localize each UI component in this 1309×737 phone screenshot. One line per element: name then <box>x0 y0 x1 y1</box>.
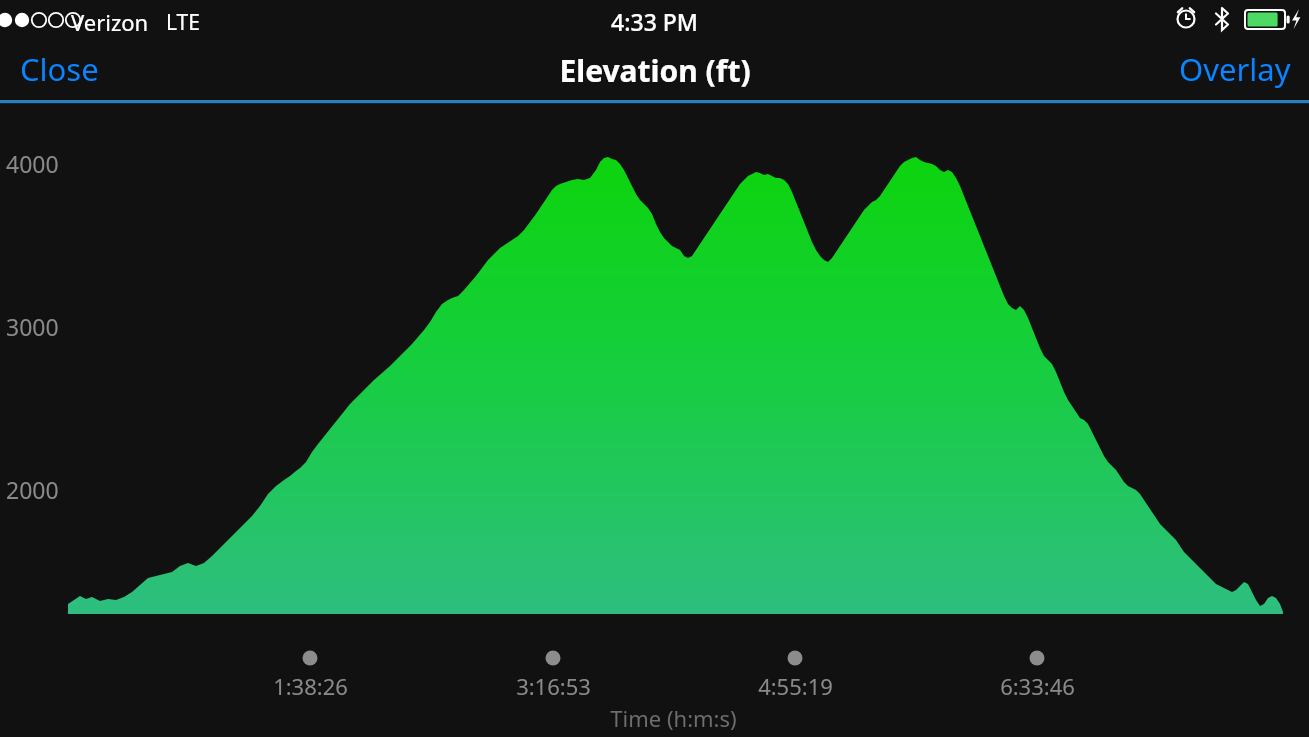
staticText: 4:55:19 <box>758 671 833 701</box>
staticText: 3000 <box>6 311 59 342</box>
staticText: 2000 <box>6 474 59 505</box>
staticText: Verizon <box>71 7 149 37</box>
staticText: 3:16:53 <box>516 671 591 701</box>
staticText: 6:33:46 <box>1000 671 1075 701</box>
staticText: 4000 <box>6 148 59 179</box>
staticText: Elevation (ft) <box>559 50 751 91</box>
staticText: 4:33 PM <box>611 6 698 37</box>
staticText: Time (h:m:s) <box>610 703 737 733</box>
staticText: Close <box>20 48 99 90</box>
staticText: 1:38:26 <box>273 671 348 701</box>
button[interactable]: Close <box>8 44 120 94</box>
staticText: LTE <box>166 8 200 37</box>
staticText: Overlay <box>1179 48 1291 90</box>
button[interactable]: Overlay <box>1141 44 1301 94</box>
